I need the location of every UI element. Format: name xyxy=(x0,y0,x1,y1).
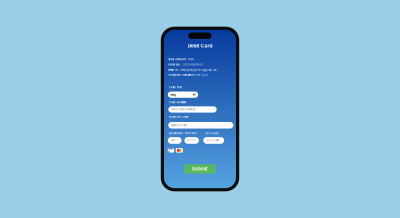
button[interactable]: MM xyxy=(168,137,182,144)
staticText: Name on Card xyxy=(171,124,188,127)
button[interactable]: CVV Code xyxy=(203,137,224,144)
staticText: CVV Code xyxy=(207,139,219,142)
staticText: Order No.: xyxy=(168,63,182,66)
staticText: 012345678901 xyxy=(183,63,203,66)
staticText: CARD NUMBER xyxy=(169,101,186,104)
staticText: VISA xyxy=(168,147,174,153)
button[interactable]: debug xyxy=(168,91,198,98)
staticText: josephgeorgeprofile@gmail.com xyxy=(180,68,217,71)
staticText: MM xyxy=(171,139,175,142)
staticText: NAME ON CARD xyxy=(169,116,189,118)
staticText: CARD TYPE xyxy=(169,86,182,89)
staticText: 15:00 xyxy=(201,73,208,76)
staticText: Submit xyxy=(192,166,208,172)
button[interactable]: Name on Card xyxy=(168,122,233,128)
staticText: ₹1976 xyxy=(188,58,194,61)
staticText: YYYY xyxy=(187,139,195,142)
button[interactable]: Valid Card Number xyxy=(168,106,217,113)
staticText: Valid Card Number xyxy=(171,108,195,111)
staticText: CVV CODE xyxy=(204,132,218,135)
staticText: debug xyxy=(170,93,176,96)
button[interactable]: Visa accepted xyxy=(168,148,174,153)
staticText: Email id: xyxy=(168,68,179,71)
staticText: EXP MONTH xyxy=(169,132,183,135)
button[interactable]: YYYY xyxy=(184,137,199,144)
button[interactable]: Mastercard accepted xyxy=(176,148,183,153)
button[interactable]: Submit xyxy=(184,164,215,174)
staticText: Complete Transaction in xyxy=(168,73,200,76)
staticText: EXP YEAR xyxy=(185,132,196,135)
staticText: Debit Card xyxy=(187,43,212,49)
staticText: Total Amount: xyxy=(168,58,187,61)
